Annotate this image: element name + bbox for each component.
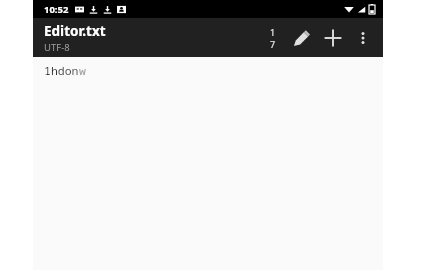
button[interactable]: Line 1 of 7: [265, 22, 281, 54]
button[interactable]: 1hdon: [33, 57, 383, 270]
staticText: 1: [270, 26, 276, 38]
staticText: Editor.txt: [44, 22, 106, 40]
staticText: UTF-8: [44, 41, 70, 54]
button[interactable]: More options: [349, 24, 377, 52]
button[interactable]: New file: [317, 22, 349, 54]
staticText: 7: [270, 38, 276, 50]
staticText: w: [79, 63, 86, 79]
staticText: 10:52: [44, 3, 69, 16]
staticText: 1hdon: [44, 63, 79, 79]
button[interactable]: Edit: [285, 22, 317, 54]
